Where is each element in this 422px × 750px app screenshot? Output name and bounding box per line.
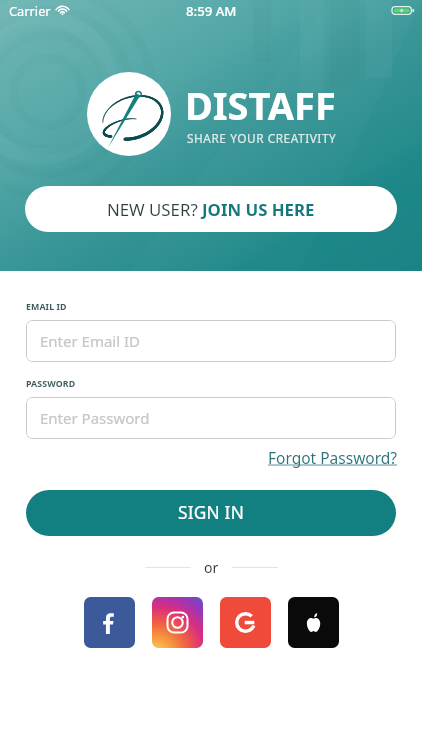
staticText: NEW USER? JOIN US HERE (107, 198, 315, 221)
staticText: 8:59 AM (186, 2, 237, 20)
staticText: DISTAFF (185, 79, 336, 131)
button[interactable]: Forgot Password? (268, 447, 398, 468)
button[interactable]: SIGN IN (26, 490, 396, 536)
button[interactable]: Facebook (84, 597, 135, 648)
staticText: Enter Email ID (40, 331, 141, 351)
staticText: Carrier (9, 2, 51, 19)
staticText: SHARE YOUR CREATIVITY (187, 130, 337, 146)
staticText: PASSWORD (26, 378, 76, 390)
button[interactable]: Enter Password (26, 397, 396, 439)
button[interactable]: Enter Email ID (26, 320, 396, 362)
staticText: Forgot Password? (268, 447, 398, 468)
button[interactable]: NEW USER? JOIN US HERE (25, 186, 397, 232)
button[interactable]: Instagram (152, 597, 203, 648)
button[interactable]: Google (220, 597, 271, 648)
staticText: SIGN IN (178, 501, 245, 525)
staticText: or (204, 558, 219, 577)
staticText: Enter Password (40, 408, 150, 428)
staticText: EMAIL ID (26, 301, 67, 313)
button[interactable]: Apple (288, 597, 339, 648)
